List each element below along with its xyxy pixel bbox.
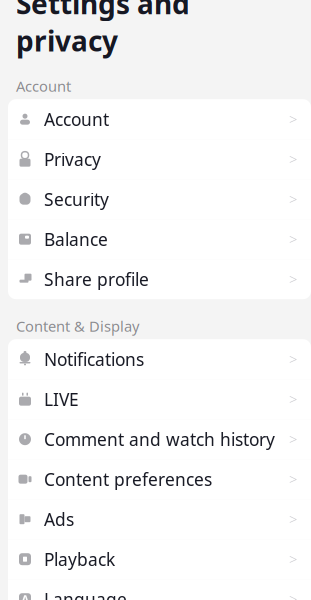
staticText: >: [289, 509, 297, 529]
staticText: Comment and watch history: [44, 428, 275, 451]
staticText: Language: [44, 588, 127, 600]
staticText: LIVE: [44, 388, 79, 411]
staticText: Balance: [44, 228, 108, 251]
button[interactable]: Security: [8, 179, 311, 219]
staticText: >: [289, 109, 297, 129]
staticText: >: [289, 429, 297, 449]
staticText: Playback: [44, 548, 115, 571]
button[interactable]: Comment and watch history: [8, 419, 311, 459]
staticText: >: [289, 189, 297, 209]
staticText: >: [289, 269, 297, 289]
button[interactable]: Account: [8, 99, 311, 139]
staticText: Security: [44, 188, 109, 211]
staticText: Content & Display: [16, 316, 139, 336]
button[interactable]: Balance: [8, 219, 311, 259]
button[interactable]: Ads: [8, 499, 311, 539]
button[interactable]: Content preferences: [8, 459, 311, 499]
staticText: A: [21, 592, 28, 600]
staticText: Notifications: [44, 348, 144, 371]
staticText: Ads: [44, 508, 74, 531]
staticText: >: [289, 549, 297, 569]
staticText: Settings and privacy: [16, 0, 190, 59]
staticText: Account: [16, 76, 71, 96]
button[interactable]: Notifications: [8, 339, 311, 379]
button[interactable]: Playback: [8, 539, 311, 579]
staticText: Share profile: [44, 268, 149, 291]
staticText: >: [289, 589, 297, 600]
staticText: Privacy: [44, 148, 101, 171]
staticText: Content preferences: [44, 468, 212, 491]
staticText: >: [289, 389, 297, 409]
button[interactable]: Privacy: [8, 139, 311, 179]
button[interactable]: A: [8, 579, 311, 600]
staticText: >: [289, 229, 297, 249]
staticText: >: [289, 469, 297, 489]
button[interactable]: LIVE: [8, 379, 311, 419]
staticText: >: [289, 149, 297, 169]
staticText: >: [289, 349, 297, 369]
staticText: Account: [44, 108, 109, 131]
button[interactable]: Share profile: [8, 259, 311, 299]
